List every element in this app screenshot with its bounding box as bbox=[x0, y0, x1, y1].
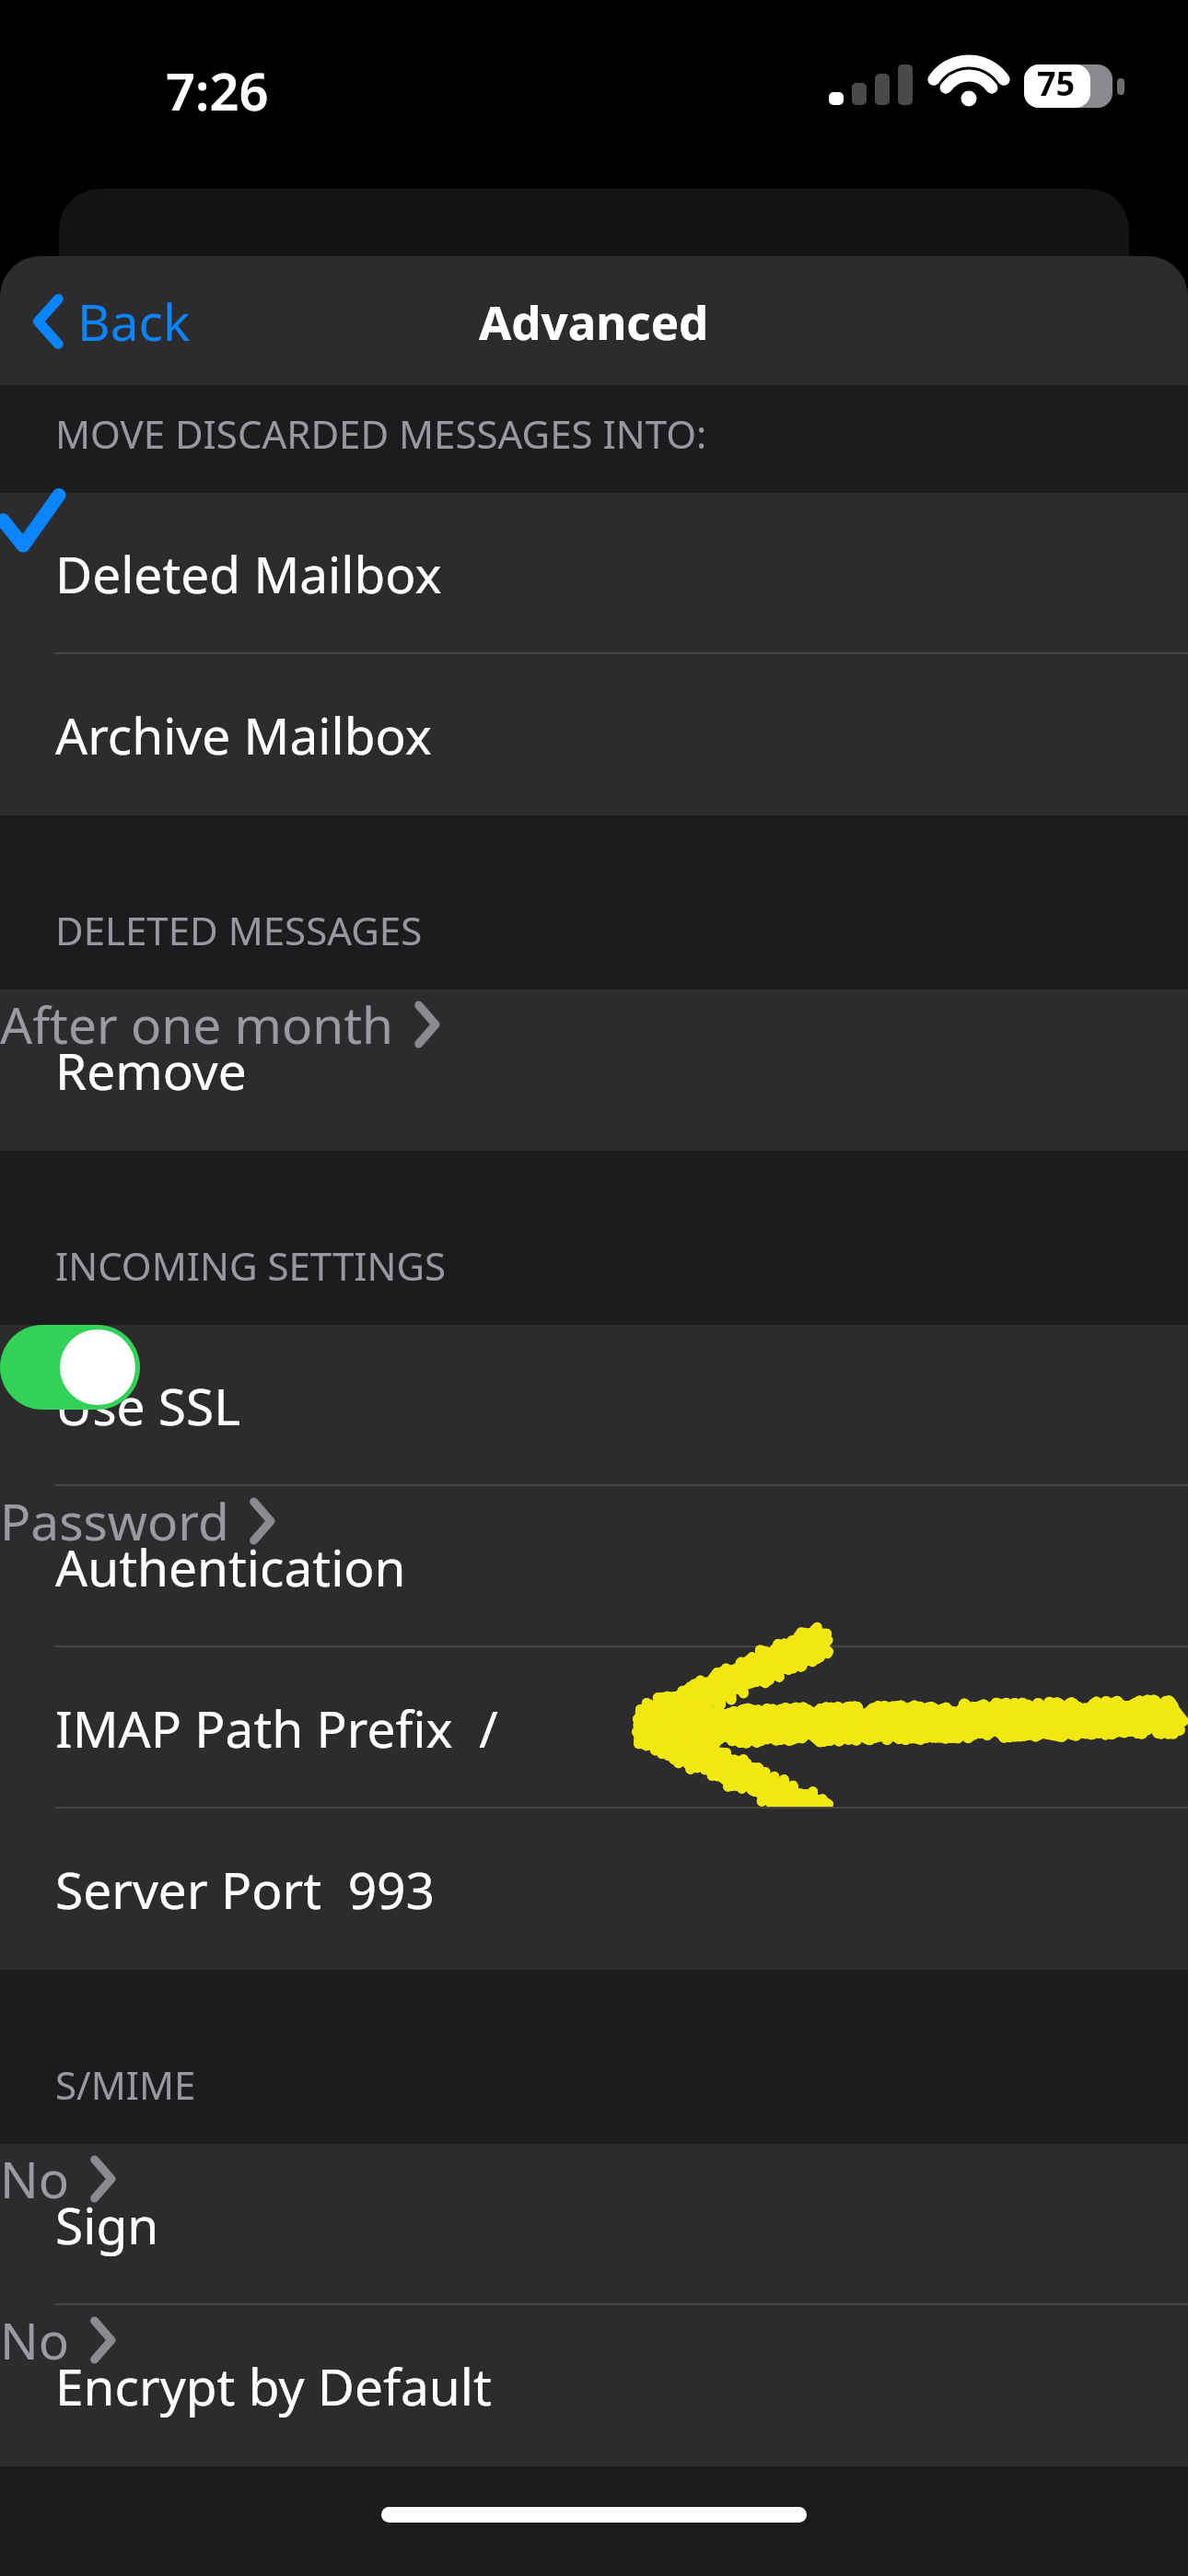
staticText: Back bbox=[77, 287, 191, 356]
staticText: 7:26 bbox=[166, 55, 269, 125]
staticText: No bbox=[0, 2144, 70, 2213]
staticText: 75 bbox=[1037, 61, 1076, 106]
staticText: S/MIME bbox=[55, 2058, 196, 2111]
staticText: Server Port 993 bbox=[55, 1855, 436, 1924]
staticText: Advanced bbox=[479, 289, 709, 353]
button[interactable]: Server Port 993 bbox=[0, 1809, 1188, 1970]
button[interactable]: IMAP Path Prefix / bbox=[0, 1647, 1188, 1809]
staticText: Deleted Mailbox bbox=[55, 539, 442, 608]
button[interactable]: Sign bbox=[0, 2144, 1188, 2305]
button[interactable]: Archive Mailbox bbox=[0, 654, 1188, 815]
staticText: INCOMING SETTINGS bbox=[55, 1239, 447, 1292]
other: Highlight arrow bbox=[626, 1644, 1179, 1805]
staticText: Password bbox=[0, 1486, 229, 1555]
staticText: Sign bbox=[55, 2190, 159, 2259]
staticText: Use SSL bbox=[55, 1371, 241, 1440]
staticText: After one month bbox=[0, 989, 394, 1059]
staticText: Encrypt by Default bbox=[55, 2351, 492, 2420]
staticText: IMAP Path Prefix / bbox=[55, 1693, 498, 1762]
button[interactable]: Remove bbox=[0, 989, 1188, 1151]
button[interactable]: Encrypt by Default bbox=[0, 2305, 1188, 2466]
button[interactable]: Use SSL bbox=[0, 1325, 1188, 1486]
button[interactable]: Deleted Mailbox bbox=[0, 493, 1188, 654]
staticText: MOVE DISCARDED MESSAGES INTO: bbox=[55, 407, 707, 460]
button[interactable]: Use SSL, on bbox=[0, 1325, 140, 1410]
button[interactable]: Back bbox=[18, 272, 205, 370]
staticText: Authentication bbox=[55, 1532, 406, 1601]
staticText: Archive Mailbox bbox=[55, 700, 432, 769]
staticText: DELETED MESSAGES bbox=[55, 904, 423, 956]
staticText: Remove bbox=[55, 1036, 247, 1105]
button[interactable]: Authentication bbox=[0, 1486, 1188, 1647]
staticText: No bbox=[0, 2305, 70, 2374]
